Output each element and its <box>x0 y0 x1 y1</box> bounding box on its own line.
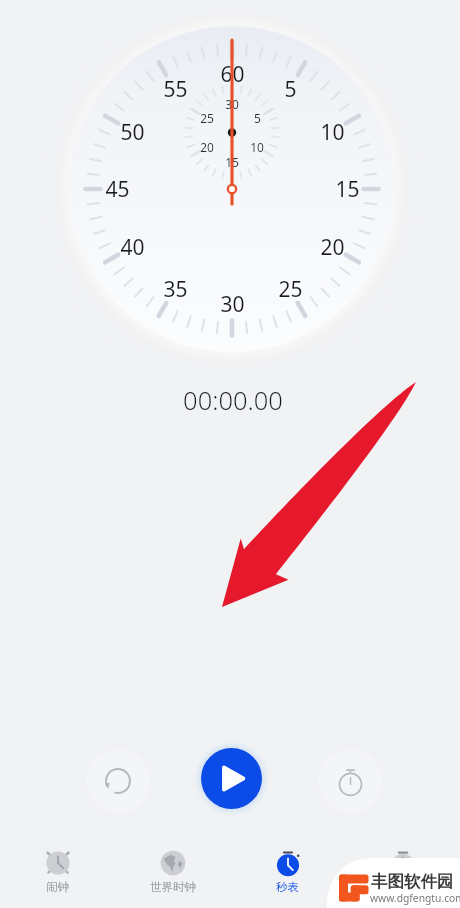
staticText: 世界时钟 <box>150 880 196 894</box>
staticText: 00:00.00 <box>3 383 460 418</box>
staticText: 50 <box>120 118 145 147</box>
staticText: 55 <box>163 75 188 104</box>
staticText: 45 <box>105 175 130 204</box>
button[interactable]: Lap <box>318 749 382 813</box>
staticText: 5 <box>254 110 261 126</box>
button[interactable]: Reset <box>86 749 150 813</box>
staticText: 秒表 <box>276 880 299 894</box>
button[interactable]: 闹钟 <box>0 838 115 894</box>
staticText: 10 <box>320 118 345 147</box>
staticText: 25 <box>278 275 303 304</box>
staticText: 丰图软件园 <box>371 871 454 892</box>
staticText: 60 <box>220 60 245 89</box>
staticText: 15 <box>335 175 360 204</box>
staticText: 20 <box>320 233 345 262</box>
staticText: www.dgfengtu.com <box>370 891 460 905</box>
staticText: 30 <box>220 290 245 319</box>
staticText: 定时器 <box>385 880 420 894</box>
staticText: 10 <box>250 139 264 155</box>
staticText: 5 <box>284 75 297 104</box>
button[interactable]: 世界时钟 <box>115 838 230 894</box>
staticText: 闹钟 <box>46 880 69 894</box>
button[interactable]: 定时器 <box>345 838 460 894</box>
staticText: 20 <box>200 139 214 155</box>
button[interactable]: 秒表 <box>230 838 345 894</box>
button[interactable]: Start <box>201 748 262 809</box>
staticText: 25 <box>200 110 214 126</box>
staticText: 40 <box>120 233 145 262</box>
staticText: 35 <box>163 275 188 304</box>
staticText: 15 <box>225 154 239 170</box>
staticText: 30 <box>225 96 239 112</box>
